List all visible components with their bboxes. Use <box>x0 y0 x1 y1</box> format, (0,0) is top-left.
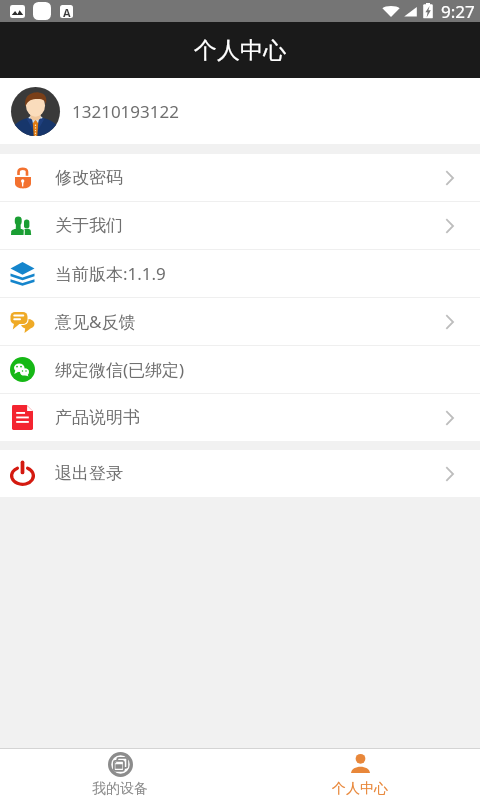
staticText: 9:27 <box>441 0 475 22</box>
staticText: 意见&反馈 <box>55 310 136 333</box>
staticText: A <box>63 5 71 18</box>
button[interactable]: 个人中心 <box>240 749 480 800</box>
staticText: 个人中心 <box>332 780 388 798</box>
staticText: 绑定微信(已绑定) <box>55 358 185 381</box>
staticText: 退出登录 <box>55 463 123 484</box>
staticText: 修改密码 <box>55 167 123 188</box>
button[interactable]: 产品说明书 <box>0 394 480 441</box>
other: Profile photo <box>11 87 60 136</box>
staticText: 当前版本:1.1.9 <box>55 262 166 285</box>
button[interactable]: 当前版本:1.1.9 <box>0 250 480 297</box>
button[interactable]: 意见&反馈 <box>0 298 480 345</box>
button[interactable]: Profile photo <box>0 78 480 144</box>
staticText: 我的设备 <box>92 780 148 798</box>
staticText: 个人中心 <box>194 36 286 65</box>
button[interactable]: 绑定微信(已绑定) <box>0 346 480 393</box>
button[interactable]: 修改密码 <box>0 154 480 201</box>
button[interactable]: 关于我们 <box>0 202 480 249</box>
button[interactable]: 退出登录 <box>0 450 480 497</box>
button[interactable]: 我的设备 <box>0 749 240 800</box>
staticText: 13210193122 <box>72 100 179 123</box>
staticText: 关于我们 <box>55 215 123 236</box>
staticText: 产品说明书 <box>55 407 140 428</box>
